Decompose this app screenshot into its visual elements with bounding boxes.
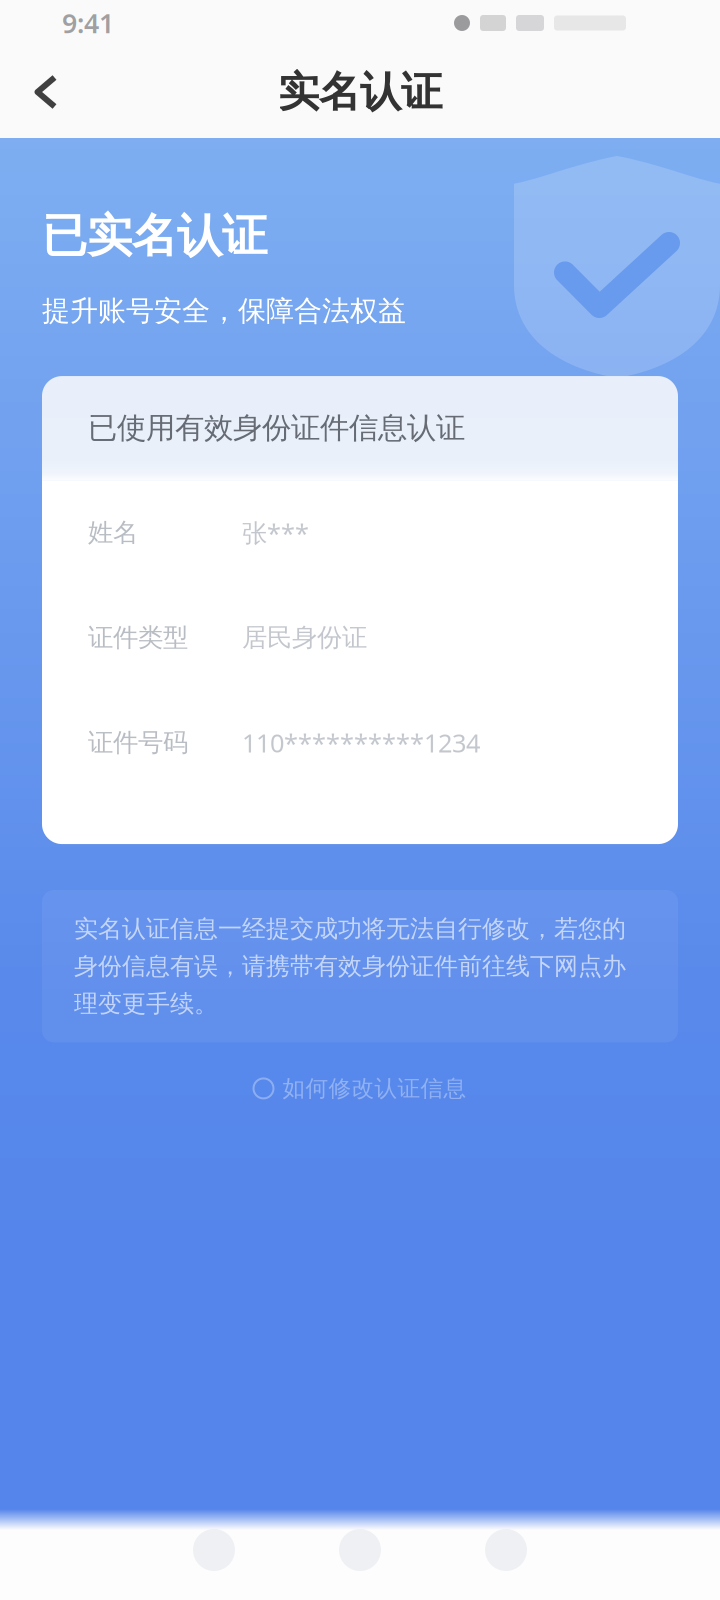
staticText: 证件号码 bbox=[88, 727, 188, 758]
staticText: 已实名认证 bbox=[42, 208, 267, 264]
button[interactable]: 消息 bbox=[287, 1500, 433, 1600]
staticText: 已使用有效身份证件信息认证 bbox=[88, 410, 465, 446]
staticText: 提升账号安全，保障合法权益 bbox=[42, 294, 406, 328]
button[interactable]: 如何修改认证信息 bbox=[42, 1064, 678, 1112]
staticText: 110**********1234 bbox=[242, 726, 480, 759]
staticText: 如何修改认证信息 bbox=[282, 1074, 466, 1102]
button[interactable]: 我的 bbox=[433, 1500, 579, 1600]
staticText: 张*** bbox=[242, 516, 309, 549]
button[interactable]: 返回 bbox=[0, 46, 92, 138]
button[interactable]: 首页 bbox=[141, 1500, 287, 1600]
staticText: 实名认证 bbox=[278, 67, 442, 117]
staticText: 证件类型 bbox=[88, 622, 188, 653]
staticText: 姓名 bbox=[88, 517, 138, 548]
staticText: 实名认证信息一经提交成功将无法自行修改，若您的身份信息有误，请携带有效身份证件前… bbox=[74, 914, 626, 1018]
staticText: 居民身份证 bbox=[242, 622, 367, 653]
staticText: 9:41 bbox=[62, 5, 114, 41]
